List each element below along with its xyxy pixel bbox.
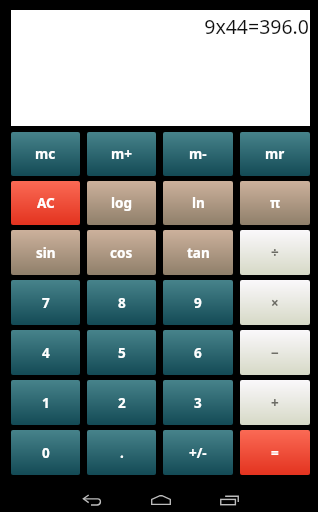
staticText: + <box>271 394 279 412</box>
button[interactable]: − <box>240 330 310 375</box>
staticText: m+ <box>111 145 132 163</box>
staticText: m- <box>189 145 207 163</box>
staticText: mc <box>35 145 56 163</box>
staticText: ln <box>192 194 205 212</box>
staticText: ÷ <box>271 244 279 262</box>
staticText: 3 <box>194 394 202 412</box>
staticText: × <box>271 294 279 312</box>
staticText: π <box>270 194 281 212</box>
button[interactable]: π <box>240 181 310 225</box>
staticText: 4 <box>42 344 50 362</box>
staticText: AC <box>37 194 55 212</box>
button[interactable]: Back <box>62 481 122 512</box>
button[interactable]: m+ <box>87 132 156 176</box>
staticText: − <box>271 344 279 362</box>
staticText: 6 <box>194 344 202 362</box>
button[interactable]: Home <box>131 481 191 512</box>
staticText: 0 <box>42 444 50 462</box>
staticText: 8 <box>118 294 126 312</box>
button[interactable]: sin <box>11 230 80 275</box>
button[interactable]: mc <box>11 132 80 176</box>
button[interactable]: tan <box>163 230 233 275</box>
button[interactable]: ÷ <box>240 230 310 275</box>
button[interactable]: 9 <box>163 280 233 325</box>
button[interactable]: 8 <box>87 280 156 325</box>
staticText: 9 <box>194 294 202 312</box>
staticText: cos <box>110 244 133 262</box>
button[interactable]: 7 <box>11 280 80 325</box>
button[interactable]: 4 <box>11 330 80 375</box>
button[interactable]: 1 <box>11 380 80 425</box>
button[interactable]: . <box>87 430 156 475</box>
staticText: +/- <box>189 444 207 462</box>
button[interactable]: log <box>87 181 156 225</box>
button[interactable]: +/- <box>163 430 233 475</box>
staticText: . <box>120 444 124 462</box>
button[interactable]: × <box>240 280 310 325</box>
button[interactable]: = <box>240 430 310 475</box>
staticText: mr <box>265 145 285 163</box>
staticText: tan <box>187 244 210 262</box>
button[interactable]: 0 <box>11 430 80 475</box>
button[interactable]: 6 <box>163 330 233 375</box>
staticText: sin <box>36 244 56 262</box>
staticText: 9x44=396.0 <box>204 13 309 40</box>
button[interactable]: ln <box>163 181 233 225</box>
button[interactable]: Recent apps <box>199 481 259 512</box>
button[interactable]: 2 <box>87 380 156 425</box>
button[interactable]: 5 <box>87 330 156 375</box>
staticText: 2 <box>118 394 126 412</box>
staticText: log <box>111 194 132 212</box>
button[interactable]: m- <box>163 132 233 176</box>
staticText: 7 <box>42 294 50 312</box>
button[interactable]: mr <box>240 132 310 176</box>
button[interactable]: 3 <box>163 380 233 425</box>
button[interactable]: cos <box>87 230 156 275</box>
staticText: 1 <box>42 394 50 412</box>
button[interactable]: AC <box>11 181 80 225</box>
staticText: 5 <box>118 344 126 362</box>
staticText: = <box>271 444 279 462</box>
button[interactable]: + <box>240 380 310 425</box>
